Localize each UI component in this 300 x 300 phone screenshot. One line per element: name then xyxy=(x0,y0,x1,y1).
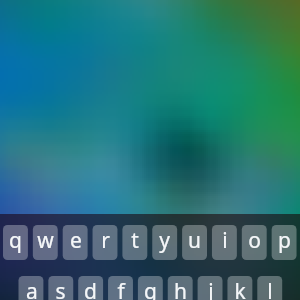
staticText: d xyxy=(84,277,97,300)
button[interactable]: f xyxy=(108,274,133,300)
button[interactable]: w xyxy=(33,223,58,258)
button[interactable]: a xyxy=(19,274,44,300)
button[interactable]: r xyxy=(93,223,118,258)
button[interactable]: p xyxy=(272,223,297,258)
button[interactable]: l xyxy=(257,274,282,300)
staticText: e xyxy=(70,226,82,255)
staticText: y xyxy=(159,226,170,255)
staticText: w xyxy=(37,226,54,255)
button[interactable]: i xyxy=(212,223,237,258)
staticText: f xyxy=(117,277,125,300)
staticText: a xyxy=(26,277,38,300)
button[interactable]: e xyxy=(63,223,88,258)
staticText: i xyxy=(222,226,228,255)
staticText: g xyxy=(144,277,157,300)
staticText: k xyxy=(234,277,246,300)
button[interactable]: k xyxy=(227,274,252,300)
button[interactable]: j xyxy=(198,274,223,300)
staticText: r xyxy=(101,226,110,255)
staticText: s xyxy=(55,277,66,300)
button[interactable]: q xyxy=(3,223,28,258)
button[interactable]: h xyxy=(168,274,193,300)
staticText: t xyxy=(131,226,139,255)
button[interactable]: u xyxy=(182,223,207,258)
staticText: j xyxy=(208,277,214,300)
button[interactable]: t xyxy=(122,223,147,258)
button[interactable]: g xyxy=(138,274,163,300)
button[interactable]: d xyxy=(78,274,103,300)
button[interactable]: o xyxy=(242,223,267,258)
staticText: p xyxy=(278,226,291,255)
staticText: o xyxy=(248,226,261,255)
staticText: h xyxy=(174,277,187,300)
staticText: q xyxy=(9,226,22,255)
button[interactable]: y xyxy=(152,223,177,258)
staticText: l xyxy=(267,277,273,300)
staticText: u xyxy=(188,226,201,255)
button[interactable]: s xyxy=(48,274,73,300)
